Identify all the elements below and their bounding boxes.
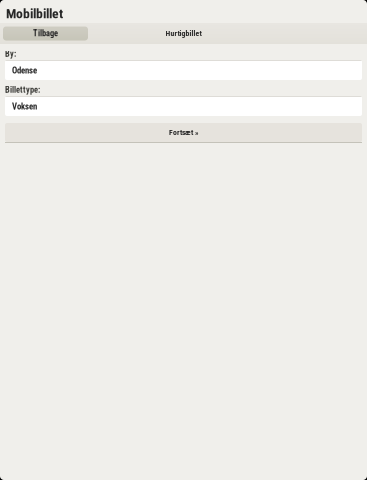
staticText: Voksen — [12, 101, 37, 112]
button[interactable]: Hurtigbillet — [118, 23, 248, 44]
staticText: Tilbage — [33, 29, 58, 38]
staticText: Billettype: — [5, 85, 40, 95]
button[interactable]: Fortsæt » — [5, 123, 362, 143]
staticText: Mobilbillet — [6, 5, 63, 21]
staticText: By: — [5, 49, 16, 59]
button[interactable]: Tilbage — [3, 26, 88, 40]
staticText: Odense — [12, 65, 37, 76]
staticText: Hurtigbillet — [165, 29, 201, 38]
staticText: Fortsæt » — [169, 128, 198, 137]
